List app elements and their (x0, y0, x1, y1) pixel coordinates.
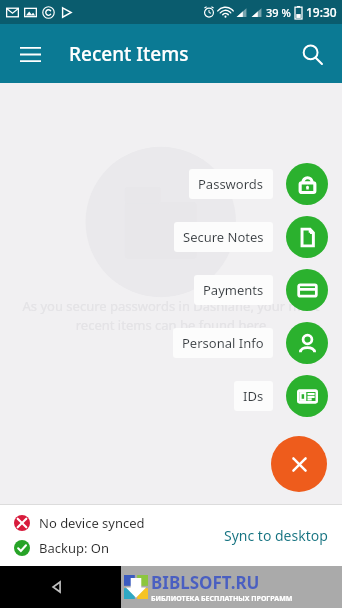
staticText: As you secure passwords in Dashlane, you… (18, 297, 324, 334)
staticText: Backup: On (39, 539, 110, 557)
staticText: 39 % (266, 5, 291, 20)
staticText: 19:30 (306, 4, 337, 20)
button[interactable]: Passwords (189, 163, 328, 205)
button[interactable]: Recent apps (265, 567, 305, 607)
staticText: Secure Notes (183, 228, 264, 246)
button[interactable]: Search (290, 32, 334, 76)
button[interactable]: Secure Notes (174, 216, 328, 258)
staticText: Payments (203, 281, 264, 299)
button[interactable]: Payments (194, 269, 328, 311)
staticText: Recent Items (69, 41, 189, 67)
staticText: Sync to desktop (224, 526, 328, 545)
button[interactable]: IDs (234, 375, 328, 417)
staticText: Personal Info (182, 334, 264, 352)
staticText: BIBLSOFT.RU (151, 571, 260, 594)
button[interactable]: Open navigation menu (8, 32, 52, 76)
button[interactable]: Sync to desktop (216, 518, 336, 553)
button[interactable]: Close menu (271, 436, 327, 492)
staticText: IDs (243, 387, 264, 405)
staticText: No device synced (39, 514, 145, 532)
staticText: Passwords (198, 175, 264, 193)
button[interactable]: Personal Info (173, 322, 328, 364)
staticText: БИБЛИОТЕКА БЕСПЛАТНЫХ ПРОГРАММ (151, 594, 293, 604)
button[interactable]: Back (37, 567, 77, 607)
button[interactable]: Home (151, 567, 191, 607)
